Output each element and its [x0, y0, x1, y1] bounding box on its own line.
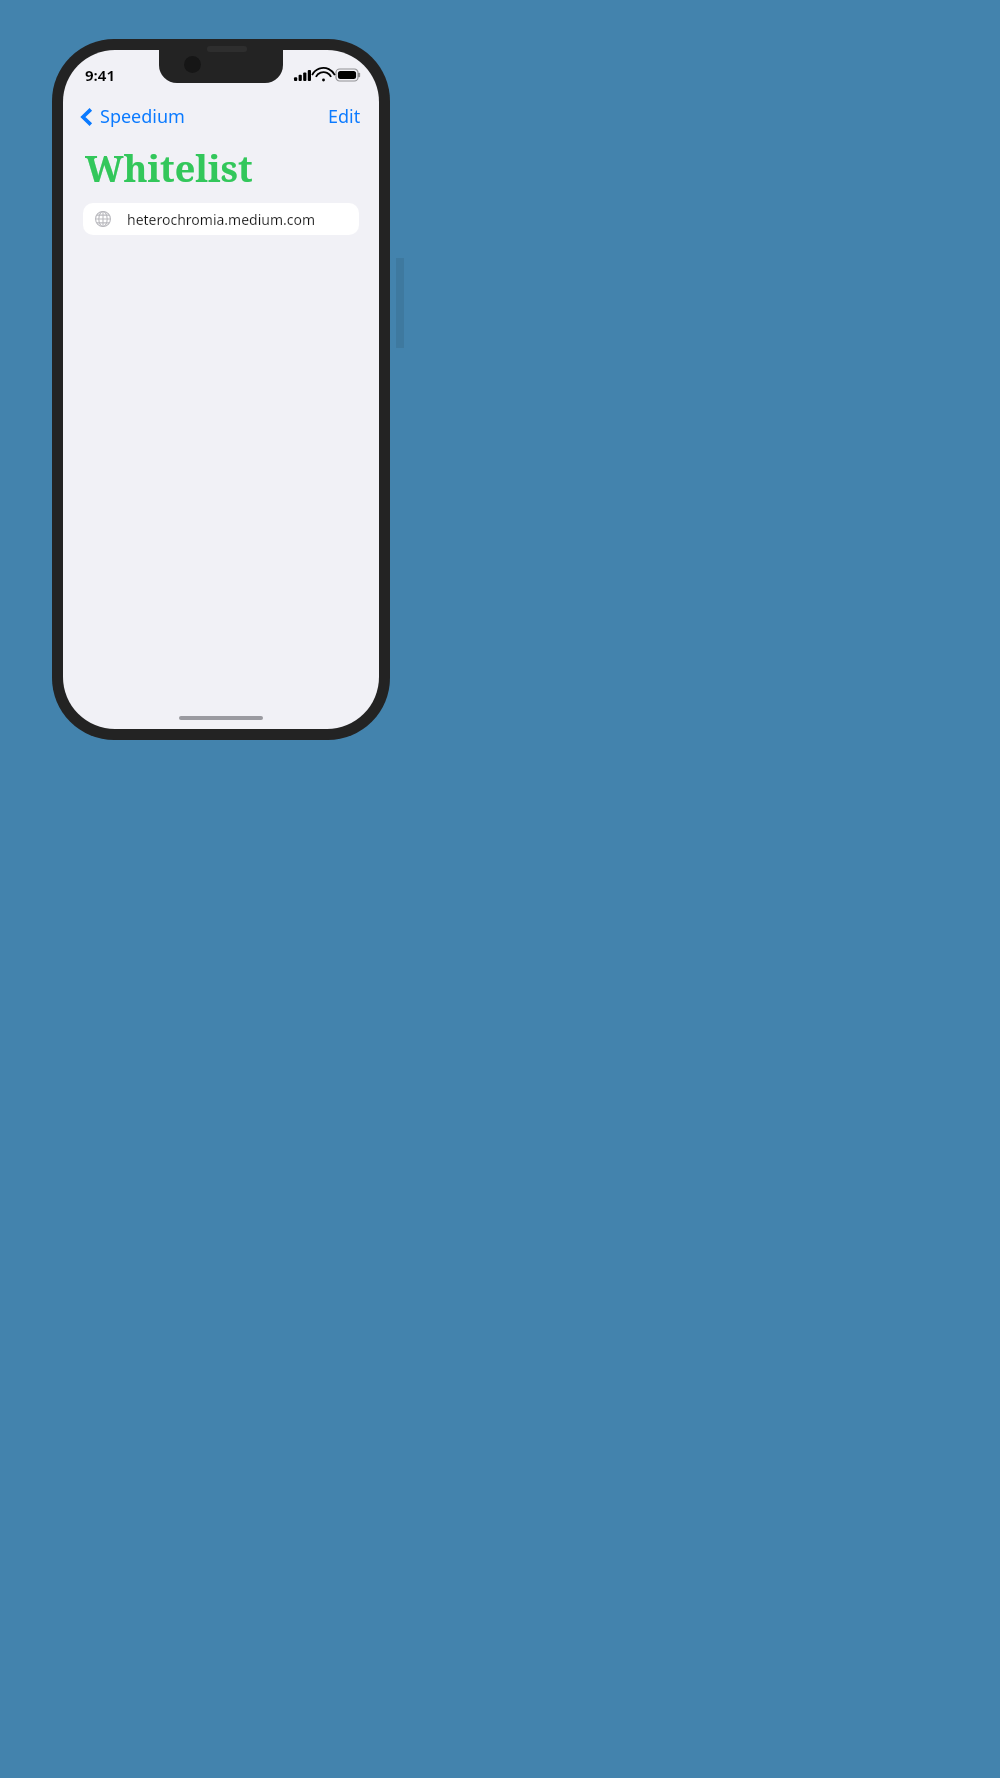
other: Battery	[336, 69, 361, 81]
staticText: 9:41	[85, 65, 115, 85]
button[interactable]: heterochromia.medium.com	[83, 203, 359, 235]
other: Wi-Fi	[316, 70, 331, 81]
staticText: Edit	[328, 104, 361, 129]
staticText: Speedium	[100, 104, 185, 129]
button[interactable]: Edit	[324, 100, 365, 133]
staticText: Whitelist	[85, 144, 253, 193]
other: Cellular signal	[294, 70, 311, 81]
staticText: heterochromia.medium.com	[127, 210, 316, 229]
button[interactable]: Speedium	[77, 100, 189, 133]
